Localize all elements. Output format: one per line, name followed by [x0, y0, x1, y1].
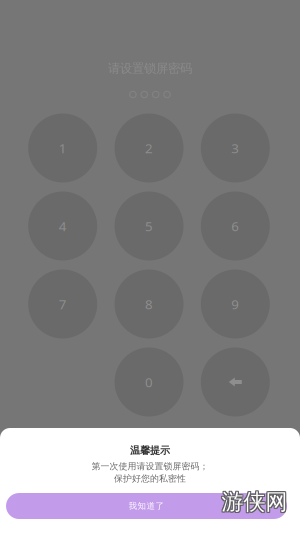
staticText: 游侠网 [222, 487, 288, 515]
staticText: 游侠网 [220, 487, 286, 515]
staticText: 游侠网 [221, 488, 287, 516]
button[interactable]: 2 [114, 113, 183, 182]
staticText: 温馨提示 [130, 444, 170, 457]
staticText: 请设置锁屏密码 [108, 61, 192, 76]
staticText: 8 [145, 295, 153, 313]
staticText: 游侠网 [221, 487, 287, 515]
staticText: 9 [231, 295, 239, 313]
staticText: 第一次使用请设置锁屏密码； [91, 461, 208, 472]
button[interactable]: 4 [28, 191, 97, 260]
staticText: 游侠网 [222, 489, 288, 517]
button[interactable]: 6 [201, 191, 270, 260]
button[interactable]: 7 [28, 269, 97, 338]
staticText: 1 [59, 139, 67, 157]
staticText: 游侠网 [221, 489, 287, 517]
staticText: 7 [59, 295, 67, 313]
staticText: 我知道了 [128, 501, 164, 511]
button[interactable]: 1 [28, 113, 97, 182]
staticText: 保护好您的私密性 [114, 473, 186, 484]
staticText: 4 [59, 217, 67, 235]
staticText: 游侠网 [222, 488, 288, 516]
button[interactable]: 8 [114, 269, 183, 338]
staticText: 5 [145, 217, 153, 235]
button[interactable]: 删除 [201, 347, 270, 416]
button[interactable]: 3 [201, 113, 270, 182]
button[interactable]: 9 [201, 269, 270, 338]
staticText: 游侠网 [220, 489, 286, 517]
staticText: 0 [145, 373, 153, 391]
button[interactable]: 5 [114, 191, 183, 260]
button[interactable]: 我知道了 [9, 493, 290, 519]
staticText: 6 [231, 217, 239, 235]
staticText: 2 [145, 139, 153, 157]
staticText: 3 [231, 139, 239, 157]
button[interactable]: 0 [114, 347, 183, 416]
staticText: 游侠网 [220, 488, 286, 516]
